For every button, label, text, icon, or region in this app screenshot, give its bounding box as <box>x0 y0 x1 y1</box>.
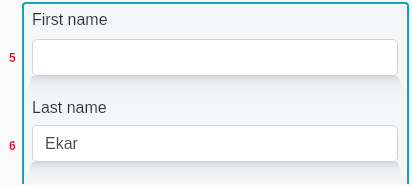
button[interactable]: First name <box>32 39 398 76</box>
staticText: First name <box>32 11 108 29</box>
staticText: 6 <box>9 139 16 151</box>
staticText: Ekar <box>45 135 78 153</box>
staticText: 5 <box>9 51 16 63</box>
staticText: Last name <box>32 99 107 117</box>
button[interactable]: Last name <box>32 125 398 162</box>
